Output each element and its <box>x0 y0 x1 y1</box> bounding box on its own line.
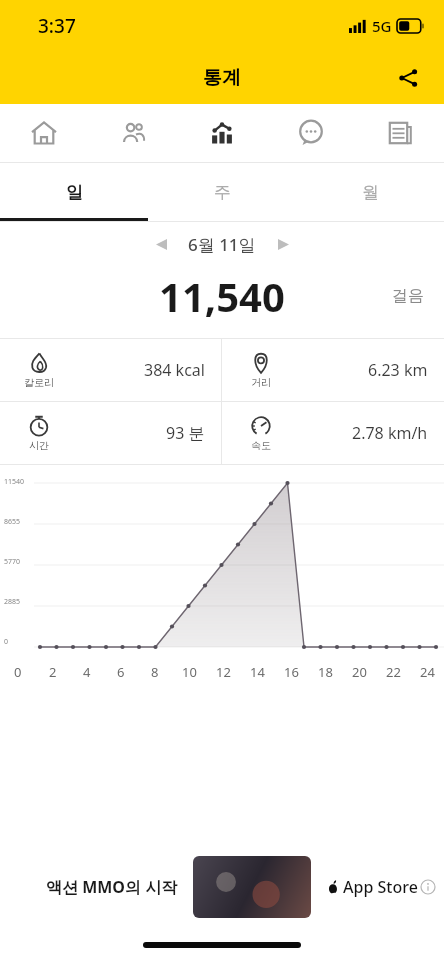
staticText: 6.23 km <box>368 359 428 381</box>
staticText: App Store <box>343 876 418 898</box>
staticText: 0 <box>4 637 9 647</box>
button[interactable]: 액션 MMO의 시작 <box>0 844 444 930</box>
button[interactable]: 주 <box>148 163 296 221</box>
staticText: 16 <box>284 663 299 681</box>
staticText: 14 <box>250 663 265 681</box>
button[interactable]: Previous day <box>144 227 178 261</box>
button[interactable]: 거리 <box>222 339 444 401</box>
staticText: 12 <box>216 663 231 681</box>
staticText: 액션 MMO의 시작 <box>46 876 178 898</box>
staticText: 거리 <box>251 376 271 389</box>
staticText: 11540 <box>4 477 25 487</box>
staticText: 2885 <box>4 597 21 607</box>
staticText: 일 <box>66 182 83 203</box>
button[interactable]: Next day <box>266 227 300 261</box>
staticText: 93 분 <box>166 422 205 444</box>
button[interactable]: Share <box>386 56 430 100</box>
staticText: 2 <box>49 663 57 681</box>
staticText: 주 <box>214 182 231 203</box>
button[interactable]: 칼로리 <box>0 339 221 401</box>
staticText: 5G <box>372 16 392 36</box>
staticText: 5770 <box>4 557 21 567</box>
button[interactable]: Ad info <box>418 877 438 897</box>
staticText: 6월 11일 <box>188 233 256 256</box>
staticText: 18 <box>318 663 333 681</box>
staticText: 10 <box>182 663 197 681</box>
staticText: 20 <box>352 663 367 681</box>
staticText: 4 <box>83 663 91 681</box>
staticText: 0 <box>14 663 22 681</box>
staticText: 24 <box>420 663 435 681</box>
staticText: 칼로리 <box>24 376 54 389</box>
staticText: 시간 <box>29 439 49 452</box>
button[interactable]: Home <box>0 104 88 162</box>
button[interactable]: News <box>355 104 444 162</box>
staticText: 8655 <box>4 517 21 527</box>
staticText: 월 <box>362 182 379 203</box>
button[interactable]: 일 <box>0 163 148 221</box>
button[interactable]: Statistics <box>177 104 266 162</box>
button[interactable]: Chat <box>266 104 355 162</box>
staticText: 384 kcal <box>144 359 205 381</box>
staticText: 8 <box>151 663 159 681</box>
staticText: 속도 <box>251 439 271 452</box>
staticText: 3:37 <box>38 13 76 39</box>
staticText: 11,540 <box>159 269 285 323</box>
staticText: 걸음 <box>392 286 424 306</box>
staticText: 6 <box>117 663 125 681</box>
button[interactable]: Friends <box>88 104 177 162</box>
button[interactable]: 월 <box>296 163 444 221</box>
staticText: 2.78 km/h <box>352 422 428 444</box>
button[interactable]: 속도 <box>222 402 444 464</box>
button[interactable]: 시간 <box>0 402 221 464</box>
staticText: 통계 <box>203 66 241 90</box>
staticText: 22 <box>386 663 401 681</box>
